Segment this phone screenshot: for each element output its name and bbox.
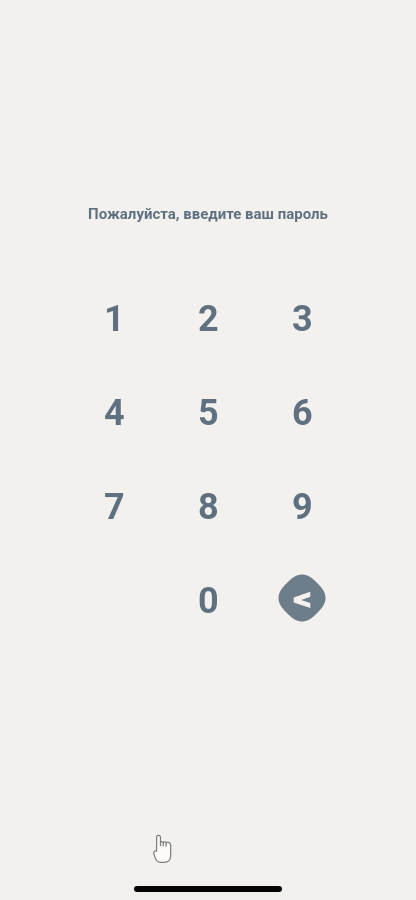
- button[interactable]: 5: [161, 366, 255, 460]
- button[interactable]: 6: [255, 366, 349, 460]
- staticText: 6: [292, 392, 313, 434]
- staticText: 5: [198, 392, 219, 434]
- staticText: 7: [104, 486, 125, 528]
- staticText: Пожалуйста, введите ваш пароль: [0, 205, 416, 223]
- button[interactable]: 0: [161, 554, 255, 648]
- staticText: 0: [198, 580, 219, 622]
- staticText: 9: [292, 486, 313, 528]
- button[interactable]: 8: [161, 460, 255, 554]
- staticText: 3: [292, 298, 313, 340]
- button[interactable]: 7: [67, 460, 161, 554]
- staticText: 1: [104, 298, 125, 340]
- button[interactable]: 9: [255, 460, 349, 554]
- staticText: 2: [198, 298, 219, 340]
- staticText: 8: [198, 486, 219, 528]
- button[interactable]: 3: [255, 272, 349, 366]
- button[interactable]: Backspace: [255, 554, 349, 648]
- button[interactable]: 2: [161, 272, 255, 366]
- staticText: 4: [104, 392, 125, 434]
- button[interactable]: 1: [67, 272, 161, 366]
- button[interactable]: 4: [67, 366, 161, 460]
